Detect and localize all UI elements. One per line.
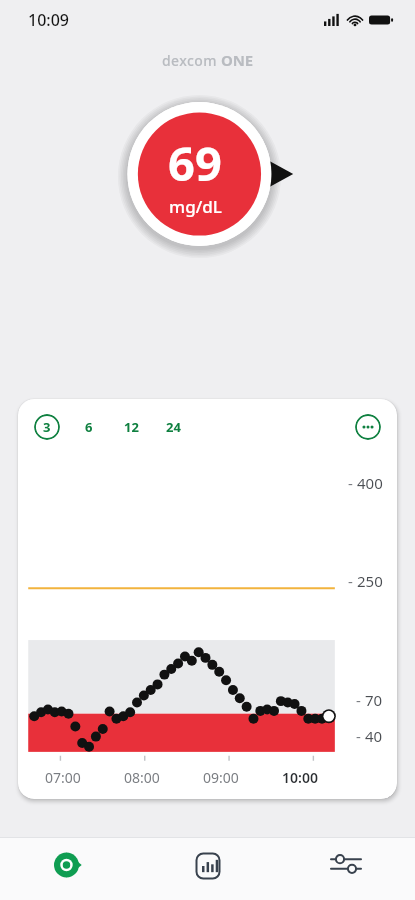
staticText: 08:00 <box>124 768 160 787</box>
staticText: - <box>348 473 353 493</box>
staticText: 400 <box>357 473 383 493</box>
button[interactable]: Reports <box>139 838 277 900</box>
staticText: 69 <box>168 131 222 195</box>
button[interactable]: 24 <box>160 414 186 440</box>
staticText: mg/dL <box>169 195 222 218</box>
button[interactable]: Glucose <box>0 838 139 900</box>
staticText: 40 <box>365 726 383 746</box>
staticText: 24 <box>166 418 181 436</box>
button[interactable]: Settings <box>277 838 415 900</box>
staticText: - <box>356 690 361 710</box>
staticText: 10:09 <box>28 9 69 31</box>
staticText: ONE <box>221 50 253 70</box>
staticText: 12 <box>124 418 139 436</box>
staticText: - <box>356 726 361 746</box>
staticText: 250 <box>357 571 383 591</box>
staticText: 70 <box>365 690 383 710</box>
staticText: 3 <box>43 418 51 436</box>
button[interactable]: 12 <box>118 414 144 440</box>
staticText: dexcom <box>162 51 217 70</box>
staticText: 10:00 <box>282 768 318 787</box>
staticText: 07:00 <box>45 768 81 787</box>
button[interactable]: 6 <box>76 414 102 440</box>
staticText: 09:00 <box>203 768 239 787</box>
staticText: - <box>348 571 353 591</box>
button[interactable]: 3 <box>34 414 60 440</box>
staticText: 6 <box>85 418 93 436</box>
button[interactable]: More options <box>355 414 381 440</box>
